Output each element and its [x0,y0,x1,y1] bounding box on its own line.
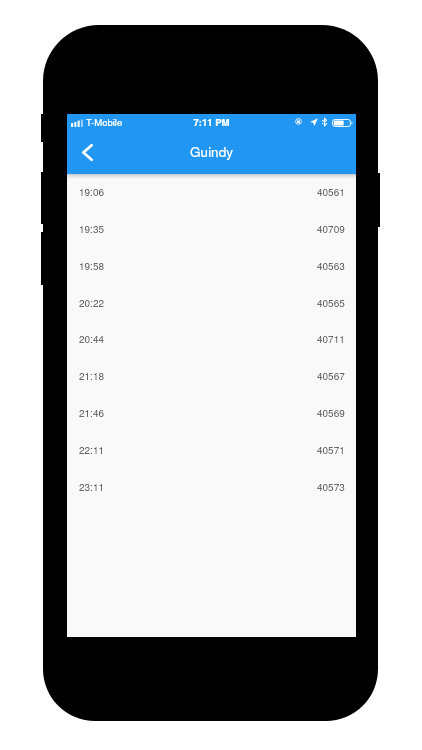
staticText: 40573 [317,480,345,494]
staticText: 20:44 [79,332,105,346]
staticText: 40561 [317,185,345,199]
button[interactable]: 22:11 [67,431,356,468]
staticText: 19:06 [79,185,105,199]
staticText: 40567 [317,369,345,383]
staticText: 19:58 [79,259,105,273]
button[interactable]: 23:11 [67,468,356,505]
staticText: 21:18 [79,369,105,383]
button[interactable]: Back [75,133,101,174]
staticText: 21:46 [79,406,105,420]
button[interactable]: 21:46 [67,394,356,431]
button[interactable]: 19:06 [67,173,356,210]
staticText: 40571 [317,443,345,457]
staticText: 7:11 PM [67,115,356,129]
button[interactable]: 19:35 [67,210,356,247]
staticText: 23:11 [79,480,105,494]
staticText: Guindy [67,142,356,161]
staticText: 20:22 [79,296,105,310]
staticText: 40563 [317,259,345,273]
staticText: 19:35 [79,222,105,236]
staticText: 40711 [317,332,345,346]
button[interactable]: 20:22 [67,284,356,321]
staticText: T-Mobile [86,115,123,129]
button[interactable]: 19:58 [67,247,356,284]
button[interactable]: 20:44 [67,320,356,357]
staticText: 40569 [317,406,345,420]
staticText: 40709 [317,222,345,236]
staticText: 22:11 [79,443,105,457]
button[interactable]: 21:18 [67,357,356,394]
staticText: 40565 [317,296,345,310]
